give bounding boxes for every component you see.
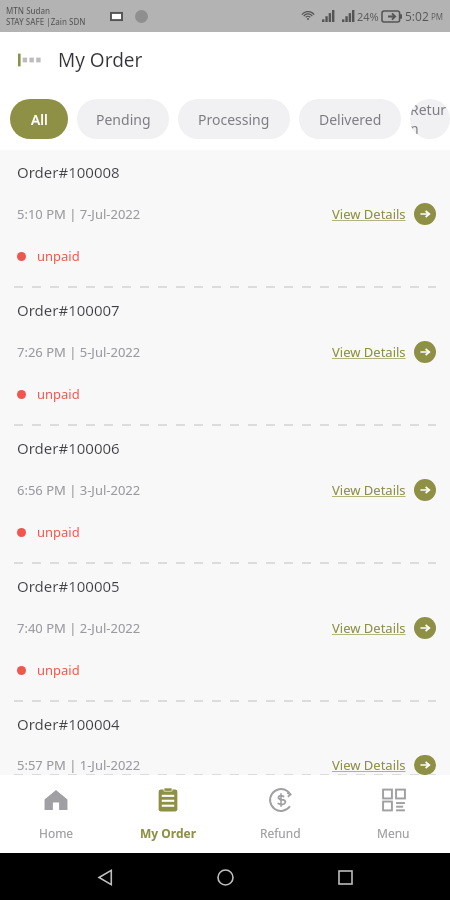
- staticText: View Details: [332, 619, 406, 637]
- button[interactable]: View Details: [332, 617, 436, 639]
- button[interactable]: View Details: [332, 203, 436, 225]
- other: View Details: [414, 341, 436, 363]
- button[interactable]: Delivered: [299, 99, 401, 139]
- staticText: Menu: [377, 825, 410, 841]
- staticText: 7:26 PM | 5-Jul-2022: [17, 343, 141, 361]
- button[interactable]: Home: [0, 787, 112, 841]
- button[interactable]: View Details: [332, 479, 436, 501]
- staticText: Pending: [96, 110, 151, 129]
- staticText: 5:10 PM | 7-Jul-2022: [17, 205, 141, 223]
- staticText: MTN Sudan: [6, 5, 51, 16]
- staticText: View Details: [332, 756, 406, 774]
- staticText: View Details: [332, 343, 406, 361]
- button[interactable]: View Details: [332, 341, 436, 363]
- other: View Details: [414, 617, 436, 639]
- staticText: 6:56 PM | 3-Jul-2022: [17, 481, 141, 499]
- staticText: unpaid: [37, 661, 80, 679]
- staticText: View Details: [332, 481, 406, 499]
- staticText: Order#100005: [17, 576, 120, 596]
- staticText: All: [31, 110, 48, 129]
- staticText: Order#100006: [17, 438, 120, 458]
- staticText: Order#100008: [17, 162, 120, 182]
- button[interactable]: Order#100005: [0, 564, 450, 702]
- button[interactable]: View Details: [332, 755, 436, 775]
- other: View Details: [414, 755, 436, 775]
- button[interactable]: Recent apps: [330, 862, 360, 892]
- button[interactable]: Pending: [77, 99, 169, 139]
- staticText: unpaid: [37, 523, 80, 541]
- staticText: Delivered: [319, 110, 382, 129]
- button[interactable]: Back: [90, 862, 120, 892]
- staticText: Refund: [260, 825, 301, 841]
- staticText: PM: [431, 11, 444, 22]
- staticText: Processing: [198, 110, 270, 129]
- staticText: Order#100004: [17, 714, 120, 734]
- button[interactable]: Order#100006: [0, 426, 450, 564]
- other: View Details: [414, 479, 436, 501]
- button[interactable]: Processing: [178, 99, 290, 139]
- button[interactable]: Order#100008: [0, 150, 450, 288]
- staticText: Order#100007: [17, 300, 120, 320]
- staticText: unpaid: [37, 247, 80, 265]
- staticText: 7:40 PM | 2-Jul-2022: [17, 619, 141, 637]
- button[interactable]: All: [10, 99, 68, 139]
- staticText: View Details: [332, 205, 406, 223]
- button[interactable]: My Order: [112, 787, 224, 841]
- button[interactable]: Home: [210, 862, 240, 892]
- button[interactable]: Order#100007: [0, 288, 450, 426]
- staticText: Return: [410, 100, 450, 138]
- staticText: My Order: [140, 825, 197, 841]
- staticText: 5:02: [405, 8, 429, 24]
- button[interactable]: Order#100004: [0, 702, 450, 775]
- staticText: 5:57 PM | 1-Jul-2022: [17, 756, 141, 774]
- button[interactable]: Refund: [224, 787, 337, 841]
- button[interactable]: Return: [410, 99, 450, 139]
- staticText: Home: [39, 825, 74, 841]
- staticText: My Order: [58, 47, 143, 73]
- staticText: STAY SAFE |Zain SDN: [6, 16, 86, 27]
- other: View Details: [414, 203, 436, 225]
- staticText: unpaid: [37, 385, 80, 403]
- staticText: 24%: [357, 9, 379, 24]
- button[interactable]: Menu: [337, 787, 450, 841]
